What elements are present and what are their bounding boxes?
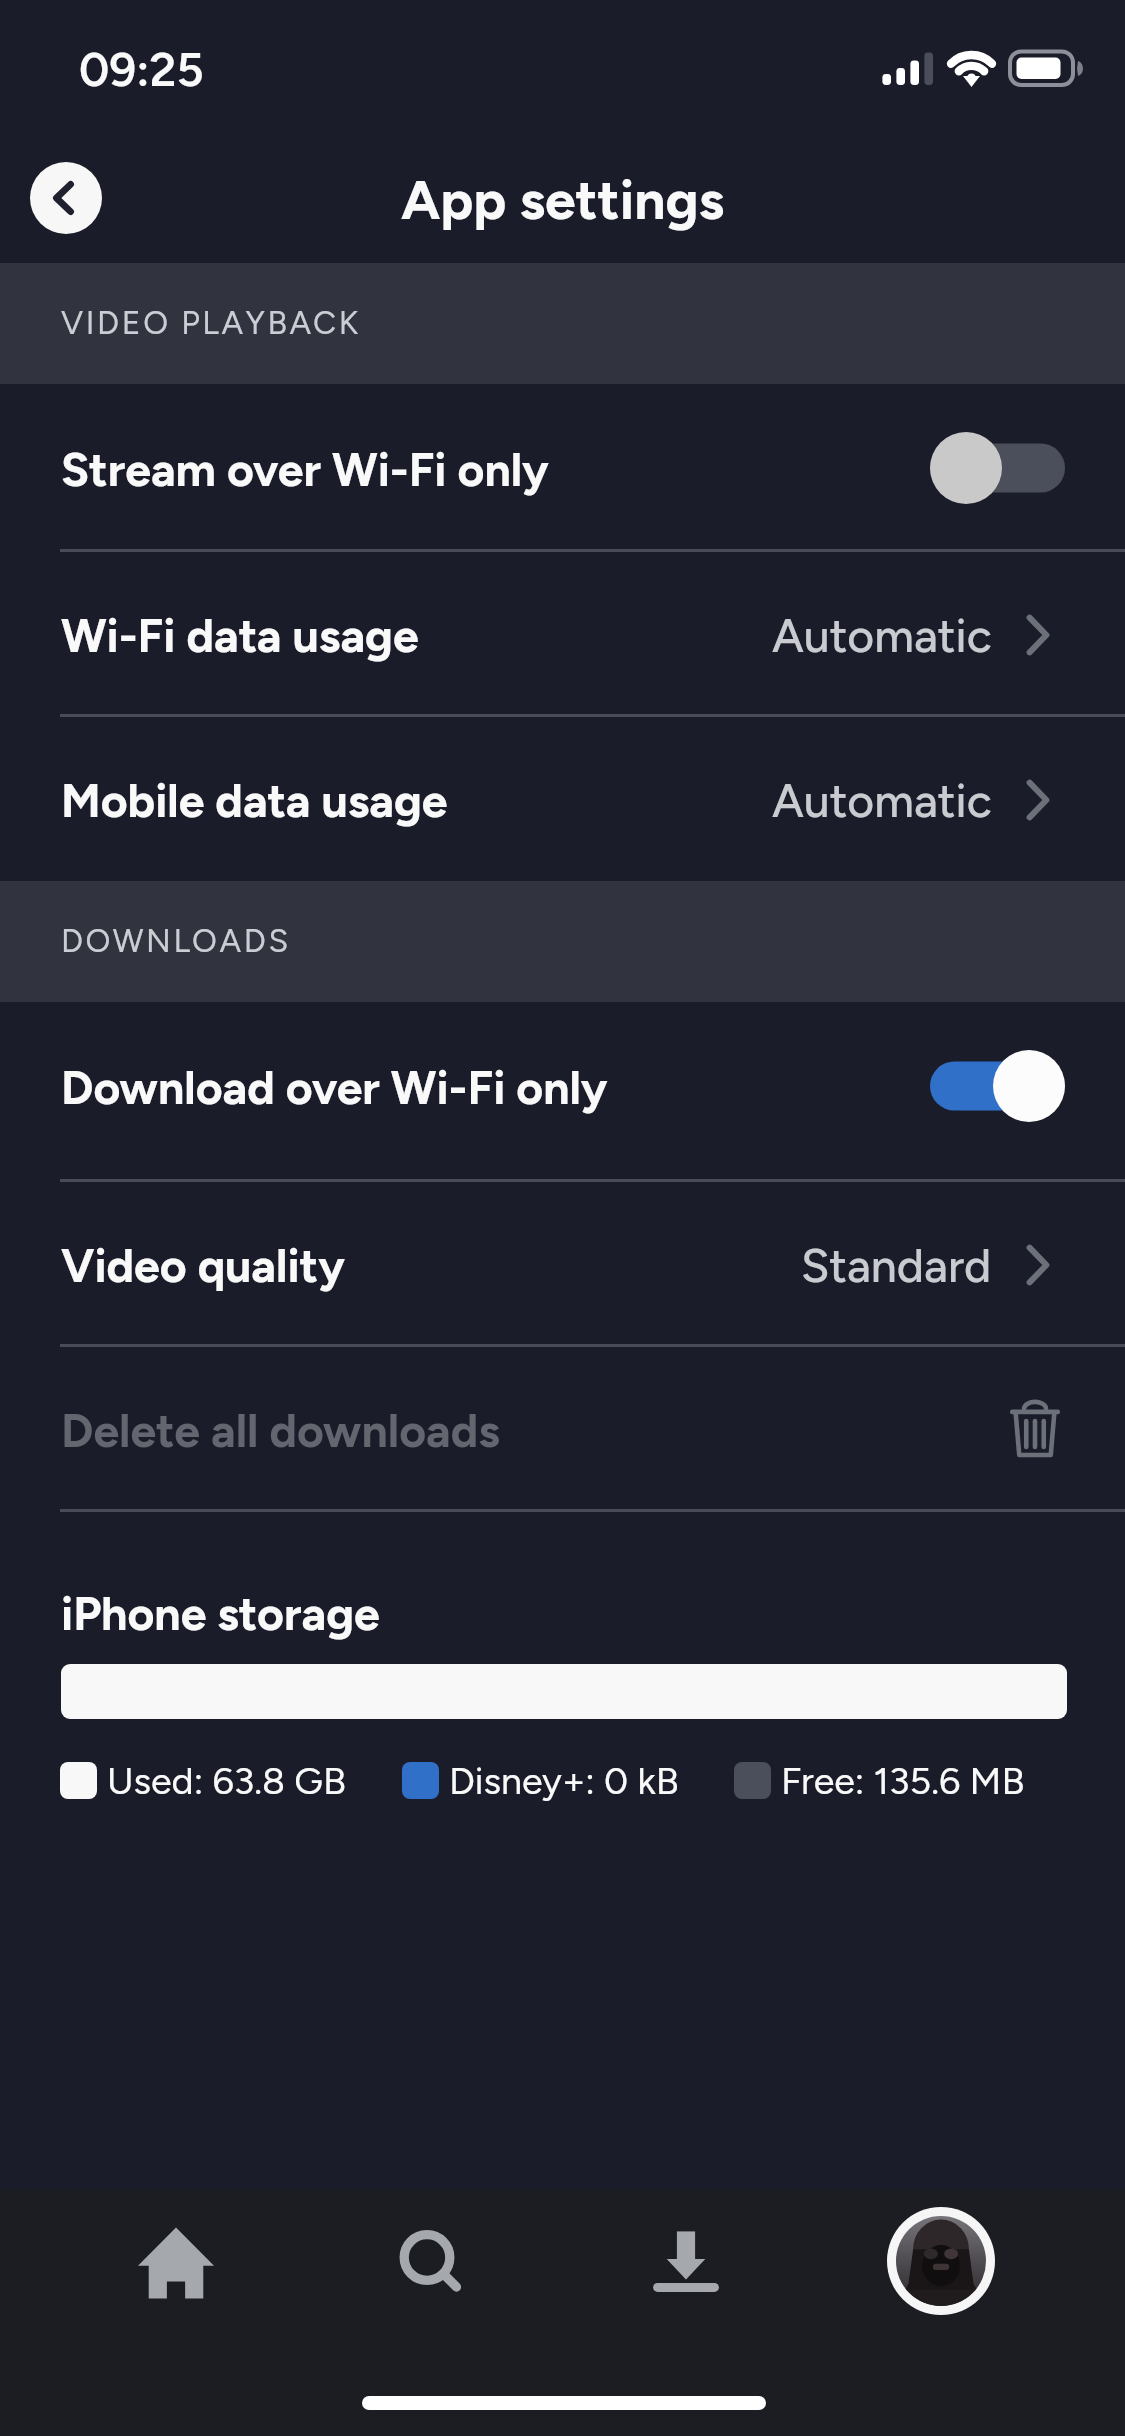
button[interactable]: Download over Wi-Fi only (0, 1002, 1125, 1180)
staticText: Stream over Wi-Fi only (61, 442, 549, 498)
staticText: DOWNLOADS (61, 922, 291, 960)
staticText: Used: 63.8 GB (107, 1758, 346, 1803)
staticText: App settings (0, 167, 1125, 233)
button[interactable]: Back (30, 162, 102, 234)
button[interactable]: Profile (863, 2183, 1019, 2339)
button[interactable]: Stream over Wi-Fi only (0, 384, 1125, 550)
button[interactable]: Search (351, 2183, 507, 2339)
button[interactable]: Delete all downloads (0, 1345, 1125, 1510)
staticText: Video quality (61, 1238, 345, 1294)
other: Delete all downloads (1010, 1401, 1060, 1457)
staticText: Free: 135.6 MB (781, 1758, 1025, 1803)
button[interactable]: Video quality (0, 1180, 1125, 1345)
button[interactable]: Mobile data usage (0, 715, 1125, 881)
staticText: Disney+: 0 kB (449, 1758, 679, 1803)
staticText: Download over Wi-Fi only (61, 1060, 608, 1116)
staticText: Automatic (772, 773, 992, 829)
staticText: 09:25 (79, 41, 204, 97)
button[interactable]: Wi-Fi data usage (0, 550, 1125, 715)
staticText: iPhone storage (61, 1586, 380, 1642)
staticText: Standard (801, 1238, 992, 1294)
staticText: Wi-Fi data usage (61, 608, 419, 664)
staticText: VIDEO PLAYBACK (61, 304, 361, 342)
staticText: Automatic (772, 608, 992, 664)
button[interactable]: Home (98, 2185, 254, 2341)
staticText: Delete all downloads (61, 1403, 500, 1459)
staticText: Mobile data usage (61, 773, 448, 829)
button[interactable]: Downloads (608, 2183, 764, 2339)
